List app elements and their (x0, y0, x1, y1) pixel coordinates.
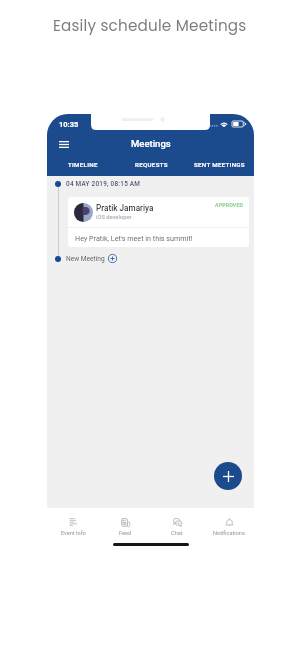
staticText: Event Info (61, 530, 86, 537)
button[interactable]: Menu (56, 136, 72, 152)
button[interactable]: New meeting (214, 462, 242, 490)
button[interactable]: New Meeting (66, 254, 117, 263)
staticText: iOS developer (96, 214, 132, 221)
button[interactable]: SENT MEETINGS (184, 155, 254, 174)
button[interactable]: REQUESTS (118, 155, 184, 174)
button[interactable]: Pratik Jamariya (68, 197, 249, 247)
staticText: New Meeting (66, 255, 105, 263)
button[interactable]: Notifications (203, 518, 254, 537)
staticText: APPROVED (215, 202, 244, 208)
staticText: TIMELINE (68, 161, 98, 168)
staticText: Feed (119, 530, 132, 537)
staticText: Hey Pratik, Let's meet in this summit! (75, 234, 193, 242)
button[interactable]: Chat (151, 518, 203, 537)
staticText: Easily schedule Meetings (53, 15, 247, 36)
staticText: Notifications (213, 530, 245, 537)
staticText: REQUESTS (135, 161, 168, 168)
staticText: 10:35 (59, 120, 79, 129)
button[interactable]: Event Info (48, 518, 99, 537)
staticText: Chat (171, 530, 183, 537)
staticText: Pratik Jamariya (96, 203, 154, 213)
staticText: Meetings (131, 138, 171, 149)
staticText: 04 MAY 2019, 08:15 AM (66, 180, 141, 188)
button[interactable]: TIMELINE (47, 155, 118, 174)
staticText: SENT MEETINGS (194, 161, 245, 168)
button[interactable]: Feed (99, 518, 151, 537)
